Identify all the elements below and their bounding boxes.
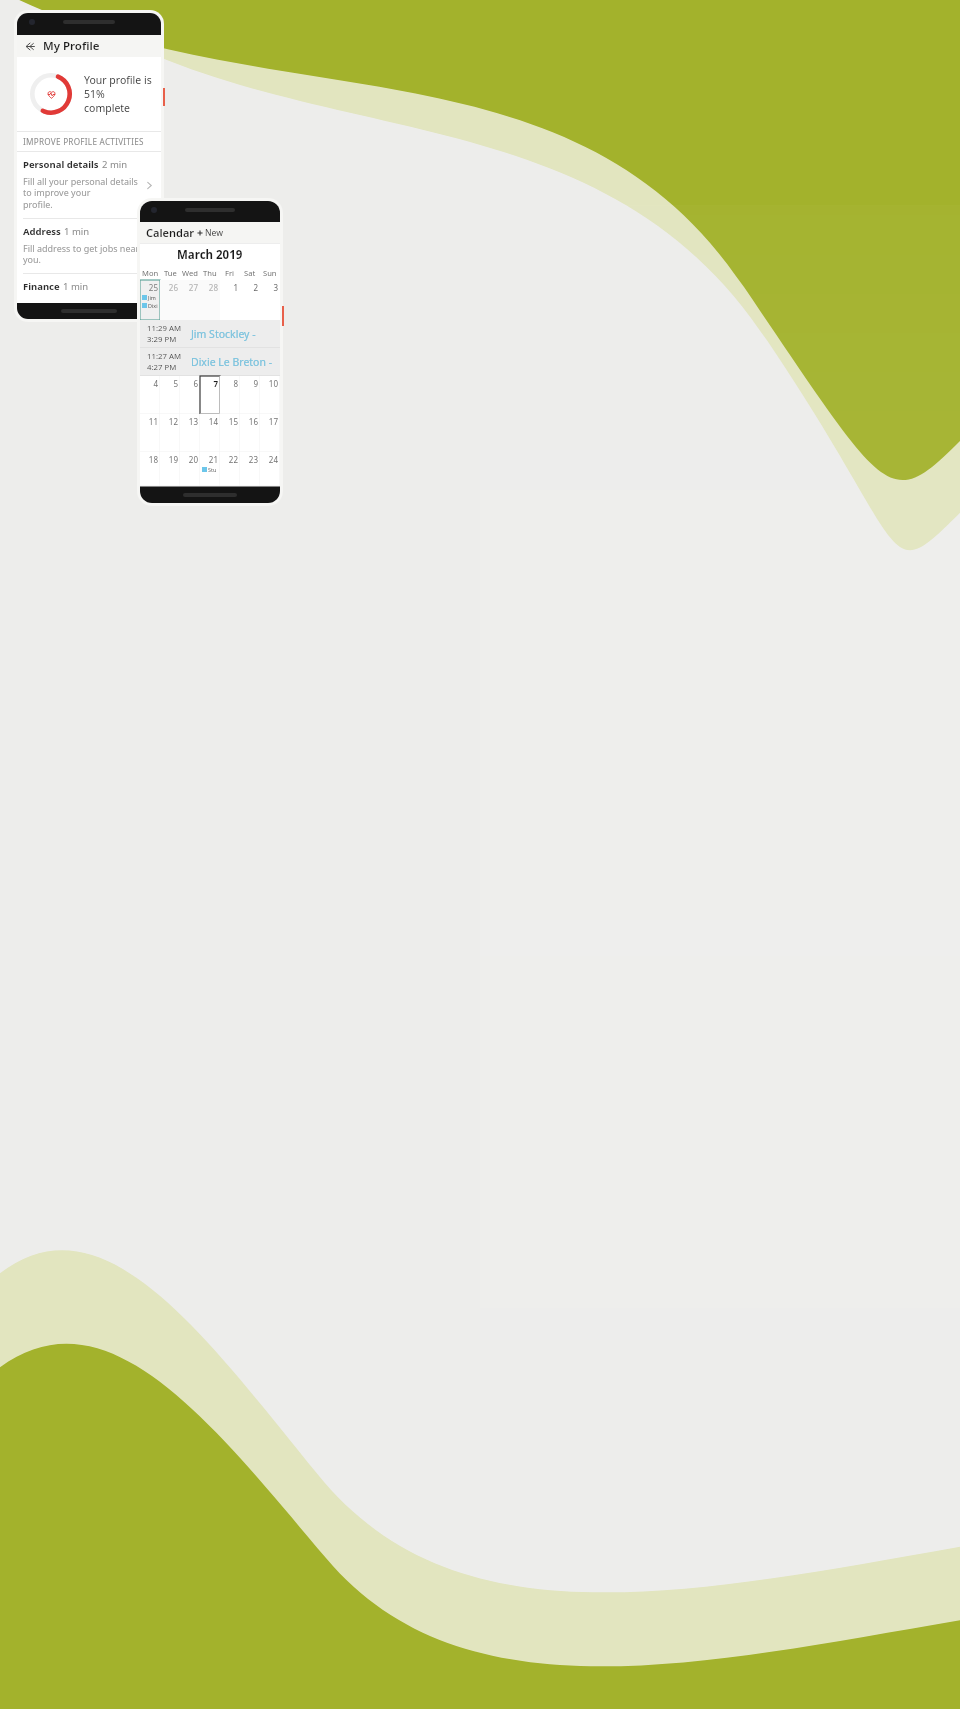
button[interactable]: 15	[220, 414, 240, 452]
staticText: 26	[162, 282, 178, 293]
button[interactable]: 22	[220, 452, 240, 486]
staticText: Fill address to get jobs near you.	[23, 242, 142, 266]
staticText: 1	[222, 282, 238, 293]
staticText: 8	[222, 378, 238, 389]
button[interactable]: 4	[140, 376, 160, 414]
staticText: 17	[262, 416, 278, 427]
button[interactable]: 2	[240, 280, 260, 320]
staticText: 11:29 AM	[147, 323, 182, 334]
staticText: Sat	[244, 268, 256, 278]
button[interactable]: 11	[140, 414, 160, 452]
button[interactable]: 10	[260, 376, 280, 414]
staticText: 16	[242, 416, 258, 427]
button[interactable]: New Appointment	[195, 227, 277, 239]
staticText: Dixie Le Breton - 2228	[191, 355, 280, 369]
button[interactable]: 11:29 AM	[140, 320, 280, 348]
staticText: Jim Stockley - 1854	[191, 327, 280, 341]
staticText: 1 min	[64, 225, 90, 238]
staticText: 14	[202, 416, 218, 427]
staticText: 11	[142, 416, 158, 427]
button[interactable]: 11:27 AM	[140, 348, 280, 376]
button[interactable]: 26	[160, 280, 180, 320]
staticText: 4:27 PM	[147, 362, 177, 373]
button[interactable]: Back	[22, 38, 38, 54]
staticText: Dixi...	[148, 302, 158, 309]
staticText: 2	[242, 282, 258, 293]
button[interactable]: 21	[200, 452, 220, 486]
button[interactable]: 18	[140, 452, 160, 486]
button[interactable]: 20	[180, 452, 200, 486]
button[interactable]: 27	[180, 280, 200, 320]
button[interactable]: 25	[140, 280, 160, 320]
button[interactable]: 24	[260, 452, 280, 486]
staticText: 3:29 PM	[147, 334, 177, 345]
button[interactable]: 1	[220, 280, 240, 320]
staticText: 12	[162, 416, 178, 427]
button[interactable]: Address	[17, 219, 161, 274]
staticText: 9	[242, 378, 258, 389]
button[interactable]: 7	[200, 376, 220, 414]
staticText: 1 min	[63, 280, 89, 293]
button[interactable]: 19	[160, 452, 180, 486]
button[interactable]: 23	[240, 452, 260, 486]
staticText: Fill all your personal details to improv…	[23, 175, 142, 211]
button[interactable]: 12	[160, 414, 180, 452]
staticText: Your profile is 51% complete	[84, 73, 161, 115]
staticText: IMPROVE PROFILE ACTIVITIES	[23, 136, 144, 147]
staticText: 24	[262, 454, 278, 465]
staticText: New Appointment	[205, 227, 276, 239]
staticText: 10	[262, 378, 278, 389]
staticText: Thu	[203, 268, 217, 278]
staticText: 28	[202, 282, 218, 293]
staticText: March 2019	[177, 247, 243, 263]
staticText: My Profile	[43, 38, 100, 54]
staticText: 15	[222, 416, 238, 427]
staticText: Sun	[263, 268, 277, 278]
staticText: Jim ...	[148, 294, 158, 301]
staticText: 11:27 AM	[147, 351, 182, 362]
button[interactable]: 28	[200, 280, 220, 320]
staticText: Calendar	[146, 225, 195, 240]
staticText: Address	[23, 225, 61, 238]
staticText: 18	[142, 454, 158, 465]
staticText: 6	[182, 378, 198, 389]
button[interactable]: 13	[180, 414, 200, 452]
button[interactable]: 3	[260, 280, 280, 320]
staticText: 21	[202, 454, 218, 465]
button[interactable]: 9	[240, 376, 260, 414]
staticText: 27	[182, 282, 198, 293]
staticText: 7	[202, 378, 218, 389]
button[interactable]: Finance	[17, 274, 161, 303]
staticText: Stua...	[208, 466, 218, 473]
staticText: Mon	[142, 268, 159, 278]
staticText: 5	[162, 378, 178, 389]
staticText: 22	[222, 454, 238, 465]
staticText: 23	[242, 454, 258, 465]
staticText: Finance	[23, 280, 60, 293]
staticText: 3	[262, 282, 278, 293]
staticText: 13	[182, 416, 198, 427]
button[interactable]: 14	[200, 414, 220, 452]
button[interactable]: 6	[180, 376, 200, 414]
staticText: Personal details	[23, 158, 99, 171]
button[interactable]: Personal details	[17, 152, 161, 219]
staticText: 20	[182, 454, 198, 465]
button[interactable]: 5	[160, 376, 180, 414]
staticText: 4	[142, 378, 158, 389]
button[interactable]: 8	[220, 376, 240, 414]
button[interactable]: 16	[240, 414, 260, 452]
staticText: 2 min	[102, 158, 128, 171]
button[interactable]: 17	[260, 414, 280, 452]
staticText: Tue	[164, 268, 177, 278]
staticText: Wed	[182, 268, 198, 278]
staticText: 19	[162, 454, 178, 465]
staticText: 25	[142, 282, 158, 293]
staticText: Fri	[225, 268, 235, 278]
